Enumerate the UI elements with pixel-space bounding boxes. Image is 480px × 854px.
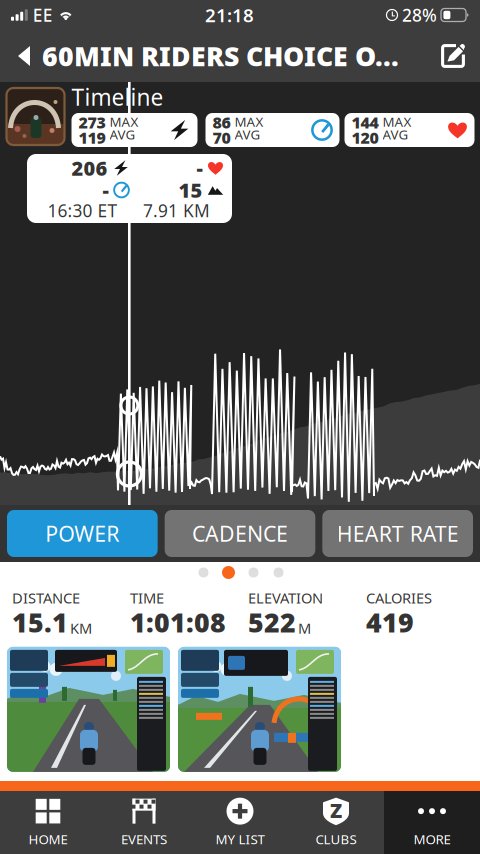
staticText: 119 xyxy=(78,127,105,148)
button[interactable]: Ride photo 1 xyxy=(7,647,170,772)
staticText: MAX xyxy=(234,113,263,130)
staticText: - xyxy=(196,155,202,181)
staticText: 21:18 xyxy=(205,3,254,27)
button[interactable]: Back xyxy=(6,33,42,79)
staticText: 28% xyxy=(402,3,437,26)
staticText: HOME xyxy=(28,830,67,848)
staticText: AVG xyxy=(109,125,135,143)
button[interactable]: Edit xyxy=(430,33,476,79)
staticText: 86 xyxy=(212,112,230,133)
staticText: 70 xyxy=(212,127,230,148)
button[interactable]: Ride photo 2 xyxy=(178,647,341,772)
staticText: CLUBS xyxy=(315,830,356,848)
staticText: TIME xyxy=(130,588,164,607)
button[interactable]: MORE xyxy=(384,791,480,854)
staticText: MORE xyxy=(413,830,450,848)
staticText: AVG xyxy=(234,125,260,143)
button[interactable]: Z xyxy=(288,791,384,854)
staticText: 419 xyxy=(366,604,414,640)
staticText: - xyxy=(102,177,108,203)
staticText: DISTANCE xyxy=(12,588,80,607)
staticText: 144 xyxy=(351,112,378,133)
staticText: MY LIST xyxy=(215,830,264,848)
staticText: CADENCE xyxy=(192,519,288,548)
staticText: 7.91 KM xyxy=(143,199,210,222)
staticText: HEART RATE xyxy=(337,519,459,548)
staticText: 1:01:08 xyxy=(130,604,226,640)
button[interactable]: CADENCE xyxy=(165,510,315,557)
staticText: 522 xyxy=(248,604,296,640)
button[interactable]: HOME xyxy=(0,791,96,854)
staticText: POWER xyxy=(45,519,119,548)
button[interactable]: POWER xyxy=(7,510,158,557)
staticText: ELEVATION xyxy=(248,588,323,607)
staticText: MAX xyxy=(109,113,138,130)
staticText: 120 xyxy=(351,127,378,148)
staticText: 273 xyxy=(78,112,105,133)
staticText: 206 xyxy=(71,155,107,181)
staticText: AVG xyxy=(382,125,408,143)
button[interactable]: MY LIST xyxy=(192,791,288,854)
staticText: Z xyxy=(330,797,342,823)
button[interactable]: EVENTS xyxy=(96,791,192,854)
staticText: KM xyxy=(70,618,92,638)
staticText: 16:30 ET xyxy=(47,199,117,222)
staticText: 15 xyxy=(178,177,202,203)
staticText: M xyxy=(298,618,311,638)
staticText: CALORIES xyxy=(366,588,432,607)
staticText: MAX xyxy=(382,113,411,130)
staticText: EE xyxy=(33,3,53,26)
staticText: 60MIN RIDERS CHOICE O... xyxy=(42,38,399,74)
staticText: EVENTS xyxy=(121,830,167,848)
button[interactable]: HEART RATE xyxy=(322,510,473,557)
staticText: Timeline xyxy=(71,82,163,112)
staticText: 15.1 xyxy=(12,604,68,640)
